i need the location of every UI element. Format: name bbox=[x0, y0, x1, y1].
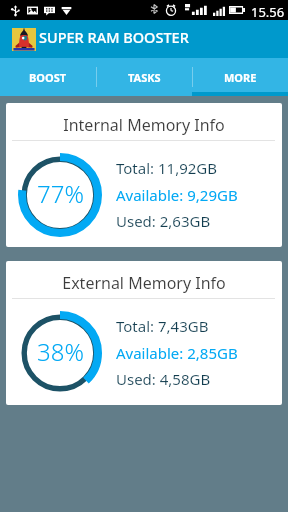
staticText: Used: 2,63GB bbox=[116, 211, 211, 231]
button[interactable]: BOOST bbox=[0, 58, 96, 96]
button[interactable]: External Memory Info bbox=[6, 261, 282, 405]
staticText: External Memory Info bbox=[6, 272, 282, 294]
staticText: Available: 2,85GB bbox=[116, 343, 238, 363]
button[interactable]: TASKS bbox=[96, 58, 192, 96]
staticText: TASKS bbox=[128, 70, 161, 85]
staticText: Total: 11,92GB bbox=[116, 158, 217, 178]
staticText: Total: 7,43GB bbox=[116, 316, 209, 336]
staticText: BOOST bbox=[29, 70, 67, 85]
button[interactable]: MORE bbox=[192, 58, 288, 96]
staticText: 38% bbox=[37, 335, 84, 368]
staticText: Internal Memory Info bbox=[6, 114, 282, 136]
staticText: Used: 4,58GB bbox=[116, 369, 211, 389]
staticText: Available: 9,29GB bbox=[116, 185, 238, 205]
staticText: 15.56 bbox=[251, 3, 285, 21]
staticText: 77% bbox=[37, 177, 84, 210]
staticText: SUPER RAM BOOSTER bbox=[39, 27, 189, 47]
staticText: MORE bbox=[224, 70, 257, 85]
button[interactable]: Internal Memory Info bbox=[6, 103, 282, 247]
